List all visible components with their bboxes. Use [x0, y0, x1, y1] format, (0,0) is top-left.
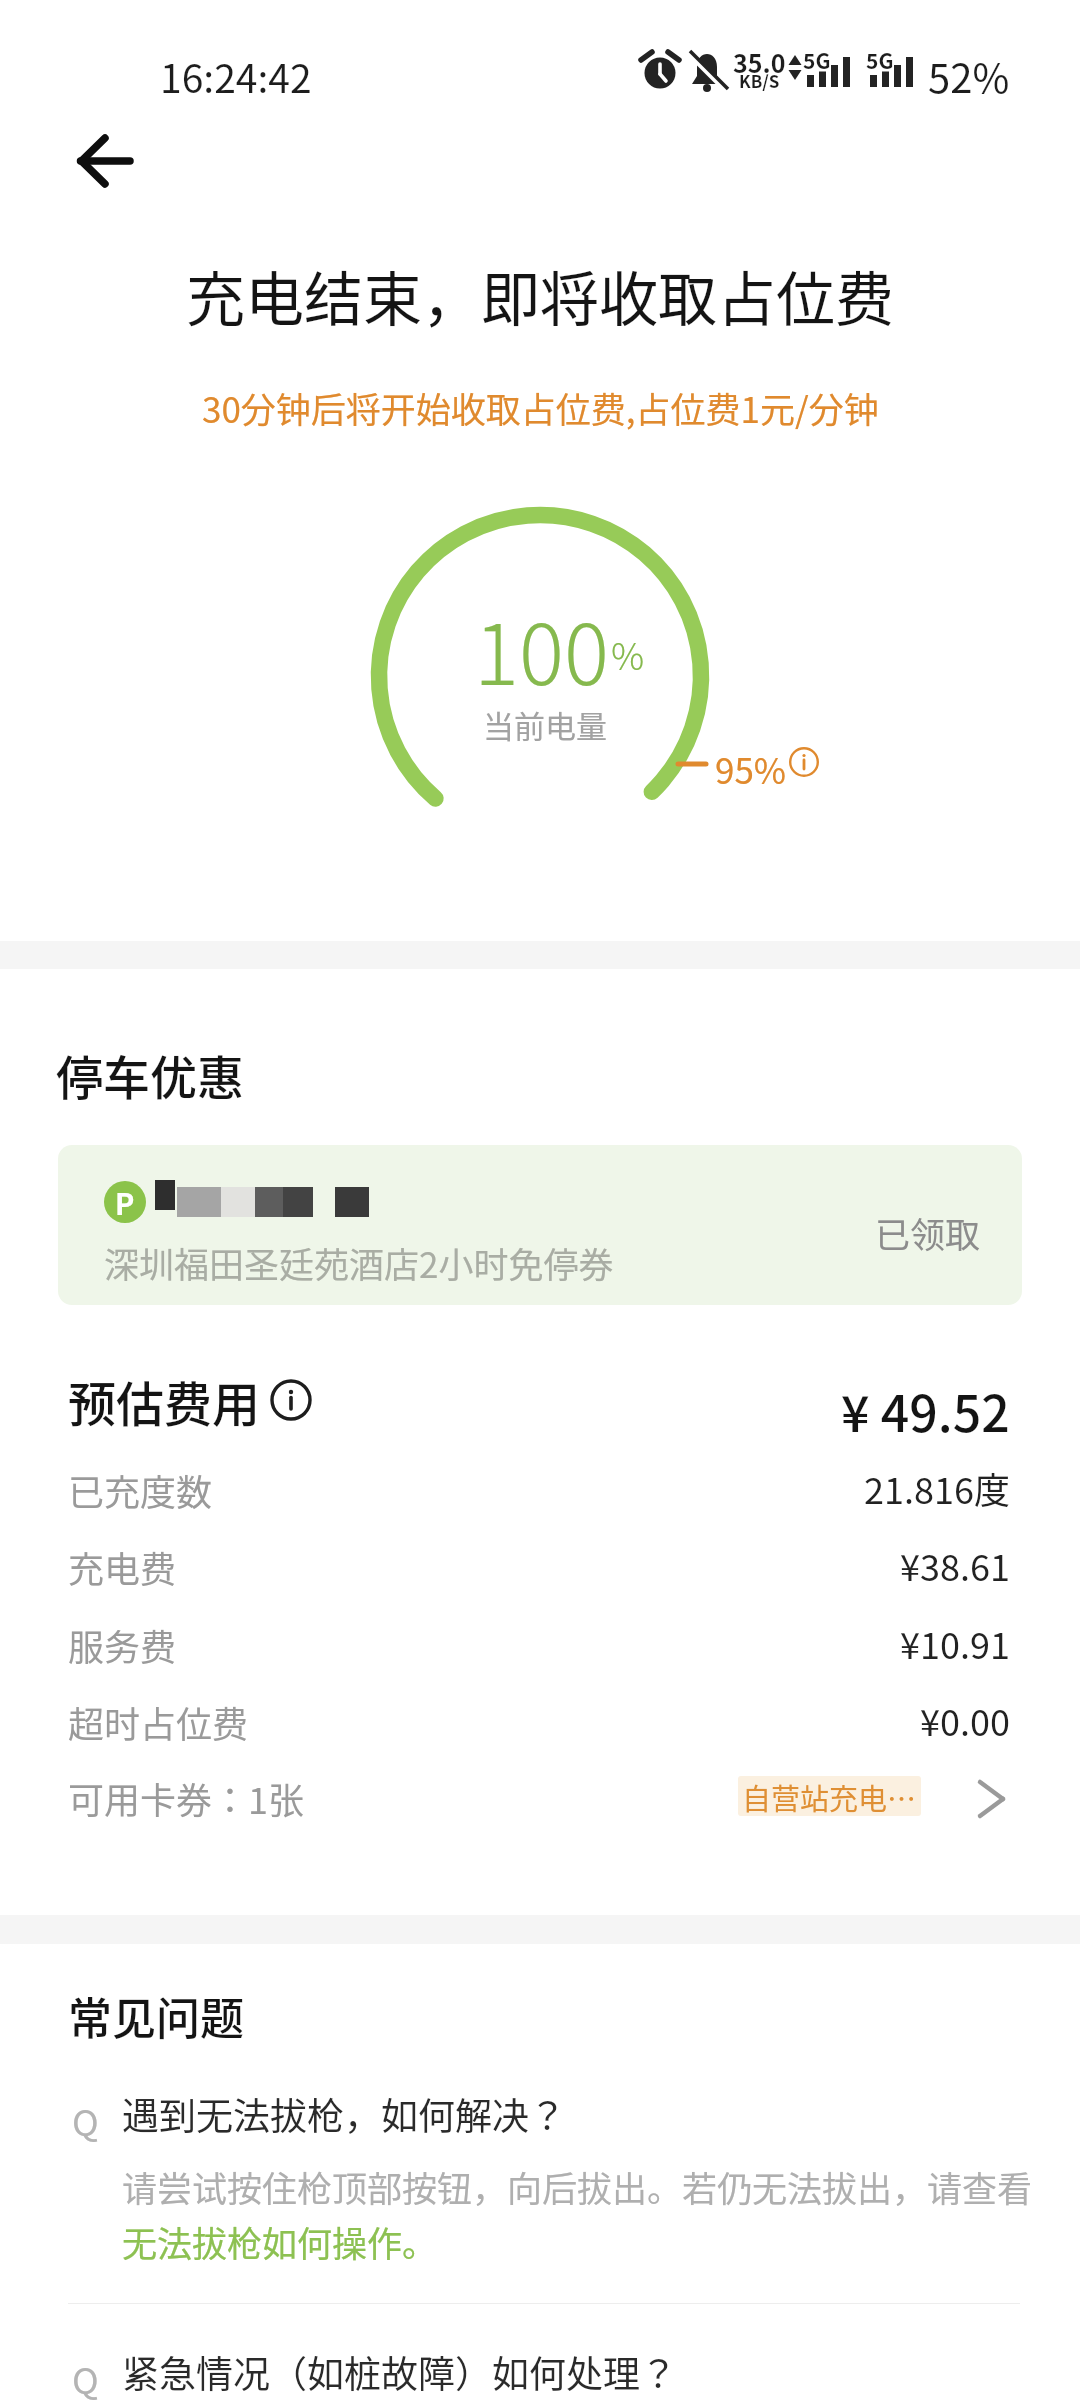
staticText: 请尝试按住枪顶部按钮，向后拔出。若仍无法拔出，请查看	[122, 2161, 1033, 2212]
staticText: 无法拔枪如何操作。	[122, 2216, 438, 2267]
staticText: Q	[72, 2094, 99, 2146]
staticText: %	[611, 627, 645, 681]
staticText: 遇到无法拔枪，如何解决？	[122, 2087, 566, 2141]
staticText: 已充度数	[68, 1464, 213, 1516]
staticText: 超时占位费	[68, 1696, 249, 1748]
staticText: 自营站充电…	[742, 1776, 917, 1816]
staticText: 100	[474, 588, 609, 710]
staticText: 35.0	[733, 44, 786, 80]
staticText: ¥10.91	[900, 1617, 1010, 1669]
button[interactable]: 遇到无法拔枪，如何解决？	[0, 2087, 1080, 2141]
button[interactable]: 费用说明	[270, 1379, 312, 1421]
staticText: 紧急情况（如桩故障）如何处理？	[122, 2345, 677, 2399]
staticText: Q	[72, 2352, 99, 2400]
staticText: ¥ 49.52	[841, 1374, 1010, 1446]
staticText: 16:24:42	[160, 48, 312, 104]
staticText: 可用卡券：1张	[68, 1772, 304, 1824]
staticText: KB/S	[739, 68, 780, 93]
staticText: 95%	[715, 743, 787, 794]
button[interactable]: P	[58, 1145, 1022, 1305]
staticText: 21.816度	[864, 1462, 1010, 1514]
staticText: 已领取	[875, 1207, 981, 1258]
staticText: ¥38.61	[900, 1539, 1010, 1591]
staticText: 充电费	[68, 1541, 177, 1593]
staticText: 服务费	[68, 1619, 177, 1671]
staticText: 充电结束，即将收取占位费	[186, 253, 895, 338]
staticText: ¥0.00	[920, 1694, 1010, 1746]
staticText: 5G	[866, 45, 894, 75]
staticText: 深圳福田圣廷苑酒店2小时免停券	[104, 1237, 614, 1288]
staticText: 常见问题	[68, 1984, 244, 2048]
staticText: 5G	[803, 45, 831, 75]
button[interactable]: 电量说明	[789, 747, 819, 777]
staticText: 30分钟后将开始收取占位费,占位费1元/分钟	[202, 382, 879, 433]
staticText: 停车优惠	[56, 1040, 244, 1108]
button[interactable]: Back	[58, 115, 150, 207]
staticText: 52%	[928, 47, 1010, 105]
staticText: 预估费用	[68, 1366, 261, 1436]
staticText: P	[115, 1181, 135, 1223]
button[interactable]: 可用卡券：1张	[0, 1745, 1080, 1835]
staticText: 当前电量	[483, 702, 607, 747]
